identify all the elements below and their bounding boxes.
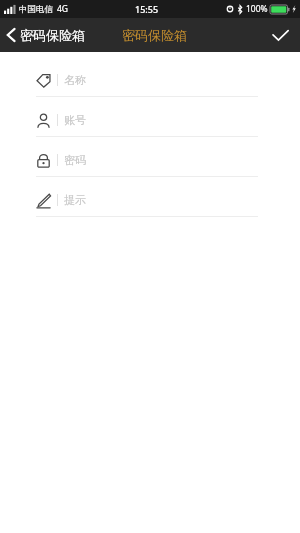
staticText: 15:55 — [135, 3, 159, 15]
staticText: 名称 — [64, 73, 86, 87]
staticText: 密码 — [64, 153, 86, 167]
button[interactable]: 提示 — [0, 184, 300, 224]
button[interactable]: 密码 — [0, 144, 300, 184]
button[interactable]: 密码保险箱 — [0, 18, 93, 52]
button[interactable]: 账号 — [0, 104, 300, 144]
staticText: 100% — [246, 3, 268, 15]
staticText: 密码保险箱 — [122, 27, 187, 43]
staticText: 4G — [57, 3, 69, 15]
staticText: 中国电信 — [19, 4, 53, 15]
staticText: 账号 — [64, 113, 86, 127]
button[interactable]: 确定 — [260, 18, 300, 52]
button[interactable]: 名称 — [0, 64, 300, 104]
staticText: 提示 — [64, 193, 86, 207]
staticText: 密码保险箱 — [20, 27, 85, 43]
